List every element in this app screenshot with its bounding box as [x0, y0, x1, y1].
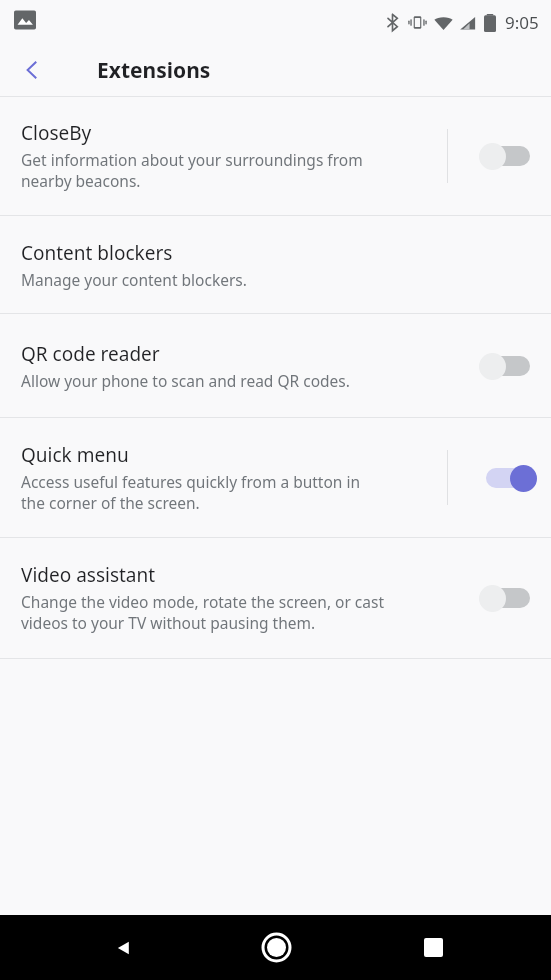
staticText: CloseBy	[21, 120, 92, 146]
staticText: 9:05	[505, 11, 539, 34]
staticText: Access useful features quickly from a bu…	[21, 471, 361, 514]
button[interactable]: Toggle off	[479, 136, 537, 176]
staticText: Video assistant	[21, 562, 156, 588]
button[interactable]: Quick menu	[0, 418, 551, 537]
staticText: Manage your content blockers.	[21, 269, 247, 290]
button[interactable]: Back	[8, 46, 56, 94]
staticText: Get information about your surroundings …	[21, 149, 363, 192]
button[interactable]: Recents	[373, 915, 493, 980]
button[interactable]: Home	[231, 915, 321, 980]
button[interactable]: Content blockers	[0, 216, 551, 313]
staticText: Change the video mode, rotate the screen…	[21, 591, 385, 634]
button[interactable]: QR code reader	[0, 314, 551, 417]
button[interactable]: Back	[64, 915, 184, 980]
button[interactable]: Toggle off	[479, 578, 537, 618]
staticText: Content blockers	[21, 240, 173, 266]
button[interactable]: CloseBy	[0, 97, 551, 215]
button[interactable]: Toggle on	[479, 458, 537, 498]
staticText: Quick menu	[21, 442, 129, 468]
staticText: Allow your phone to scan and read QR cod…	[21, 370, 350, 391]
staticText: QR code reader	[21, 341, 160, 367]
staticText: Extensions	[97, 56, 211, 85]
button[interactable]: Toggle off	[479, 346, 537, 386]
button[interactable]: Video assistant	[0, 538, 551, 658]
